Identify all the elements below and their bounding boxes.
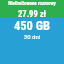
staticText: 450 GB xyxy=(0,18,64,33)
button[interactable]: Nielimitowane rozmowy xyxy=(0,0,64,18)
staticText: Nielimitowane rozmowy xyxy=(0,0,64,6)
staticText: 30 dni xyxy=(0,33,64,40)
staticText: 27.99 zł xyxy=(0,9,64,19)
